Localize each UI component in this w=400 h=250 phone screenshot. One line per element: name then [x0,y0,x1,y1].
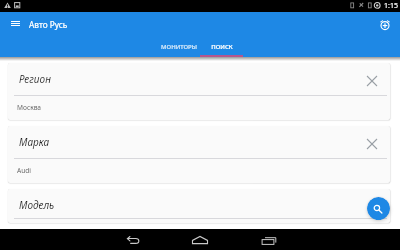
staticText: Модель [19,198,55,212]
button[interactable]: Back [120,229,146,250]
staticText: Audi [17,166,32,175]
button[interactable]: ПОИСК [200,37,243,56]
button[interactable]: Home [187,229,213,250]
staticText: 1:15 [384,1,398,11]
button[interactable]: Recent apps [257,230,283,250]
button[interactable]: Search [367,197,390,220]
button[interactable]: Регион [8,63,390,120]
staticText: Авто Русь [29,19,68,30]
button[interactable]: Clear [364,73,380,89]
staticText: ПОИСК [211,43,233,51]
staticText: Марка [19,135,50,149]
staticText: Регион [19,72,51,86]
button[interactable]: Open navigation drawer [5,15,25,35]
button[interactable]: Модель [8,189,390,223]
button[interactable]: МОНИТОРЫ [155,37,203,56]
button[interactable]: Clear [364,136,380,152]
button[interactable]: Add alarm [376,16,394,34]
button[interactable]: Марка [8,126,390,183]
staticText: Москва [17,103,42,112]
staticText: МОНИТОРЫ [161,43,197,51]
